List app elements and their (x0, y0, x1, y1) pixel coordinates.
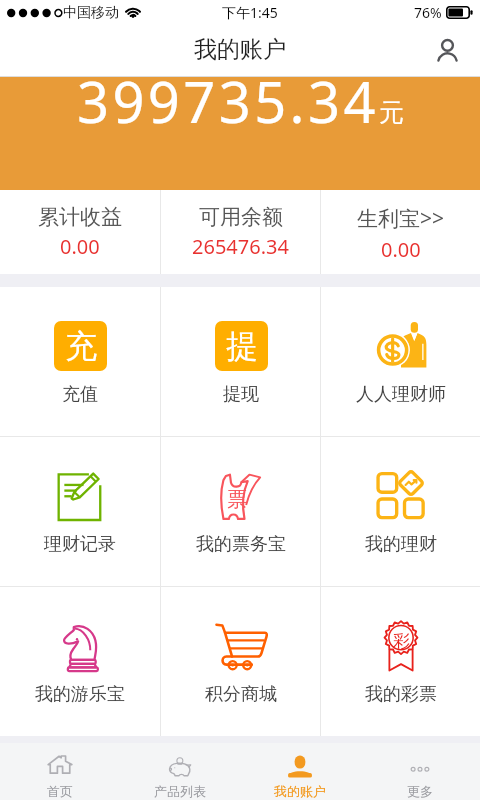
button[interactable]: 积分商城 (161, 587, 320, 736)
staticText: 元 (379, 97, 404, 128)
staticText: 累计收益 (38, 204, 122, 230)
staticText: 提 (226, 326, 258, 366)
staticText: 可用余额 (199, 204, 283, 230)
button[interactable]: 彩 (321, 587, 480, 736)
staticText: 提现 (223, 383, 259, 406)
button[interactable]: 理财记录 (0, 437, 160, 586)
staticText: 我的理财 (365, 533, 437, 556)
staticText: 0.00 (381, 236, 421, 263)
staticText: 生利宝>> (357, 204, 445, 233)
staticText: 下午1:45 (222, 3, 278, 22)
staticText: 产品列表 (154, 783, 206, 799)
button[interactable]: 票 (161, 437, 320, 586)
staticText: 我的游乐宝 (35, 683, 125, 706)
staticText: 票 (227, 487, 247, 512)
button[interactable]: 生利宝>> (321, 190, 480, 274)
staticText: 0.00 (60, 233, 100, 260)
button[interactable]: 人人理财师 (321, 287, 480, 436)
staticText: 我的票务宝 (196, 533, 286, 556)
staticText: 我的账户 (194, 35, 286, 64)
button[interactable]: 产品列表 (120, 743, 240, 800)
staticText: 积分商城 (205, 683, 277, 706)
button[interactable]: 我的游乐宝 (0, 587, 160, 736)
button[interactable]: 累计收益 (0, 190, 160, 274)
staticText: 76% (414, 3, 442, 22)
staticText: 首页 (47, 783, 73, 799)
button[interactable]: 我的理财 (321, 437, 480, 586)
staticText: 中国移动 (63, 4, 119, 22)
staticText: 充值 (62, 383, 98, 406)
button[interactable]: 可用余额 (161, 190, 320, 274)
button[interactable]: 更多 (360, 743, 480, 800)
button[interactable]: 首页 (0, 743, 120, 800)
staticText: 人人理财师 (356, 383, 446, 406)
staticText: 彩 (393, 631, 410, 652)
staticText: 我的账户 (274, 783, 326, 799)
button[interactable]: Account (426, 30, 468, 72)
button[interactable]: 充 (0, 287, 160, 436)
button[interactable]: 我的账户 (240, 743, 360, 800)
staticText: 399735.34 (77, 63, 379, 139)
button[interactable]: 提 (161, 287, 320, 436)
staticText: 265476.34 (192, 233, 289, 260)
staticText: 我的彩票 (365, 683, 437, 706)
staticText: 理财记录 (44, 533, 116, 556)
staticText: 充 (65, 326, 97, 366)
staticText: 更多 (407, 783, 433, 799)
